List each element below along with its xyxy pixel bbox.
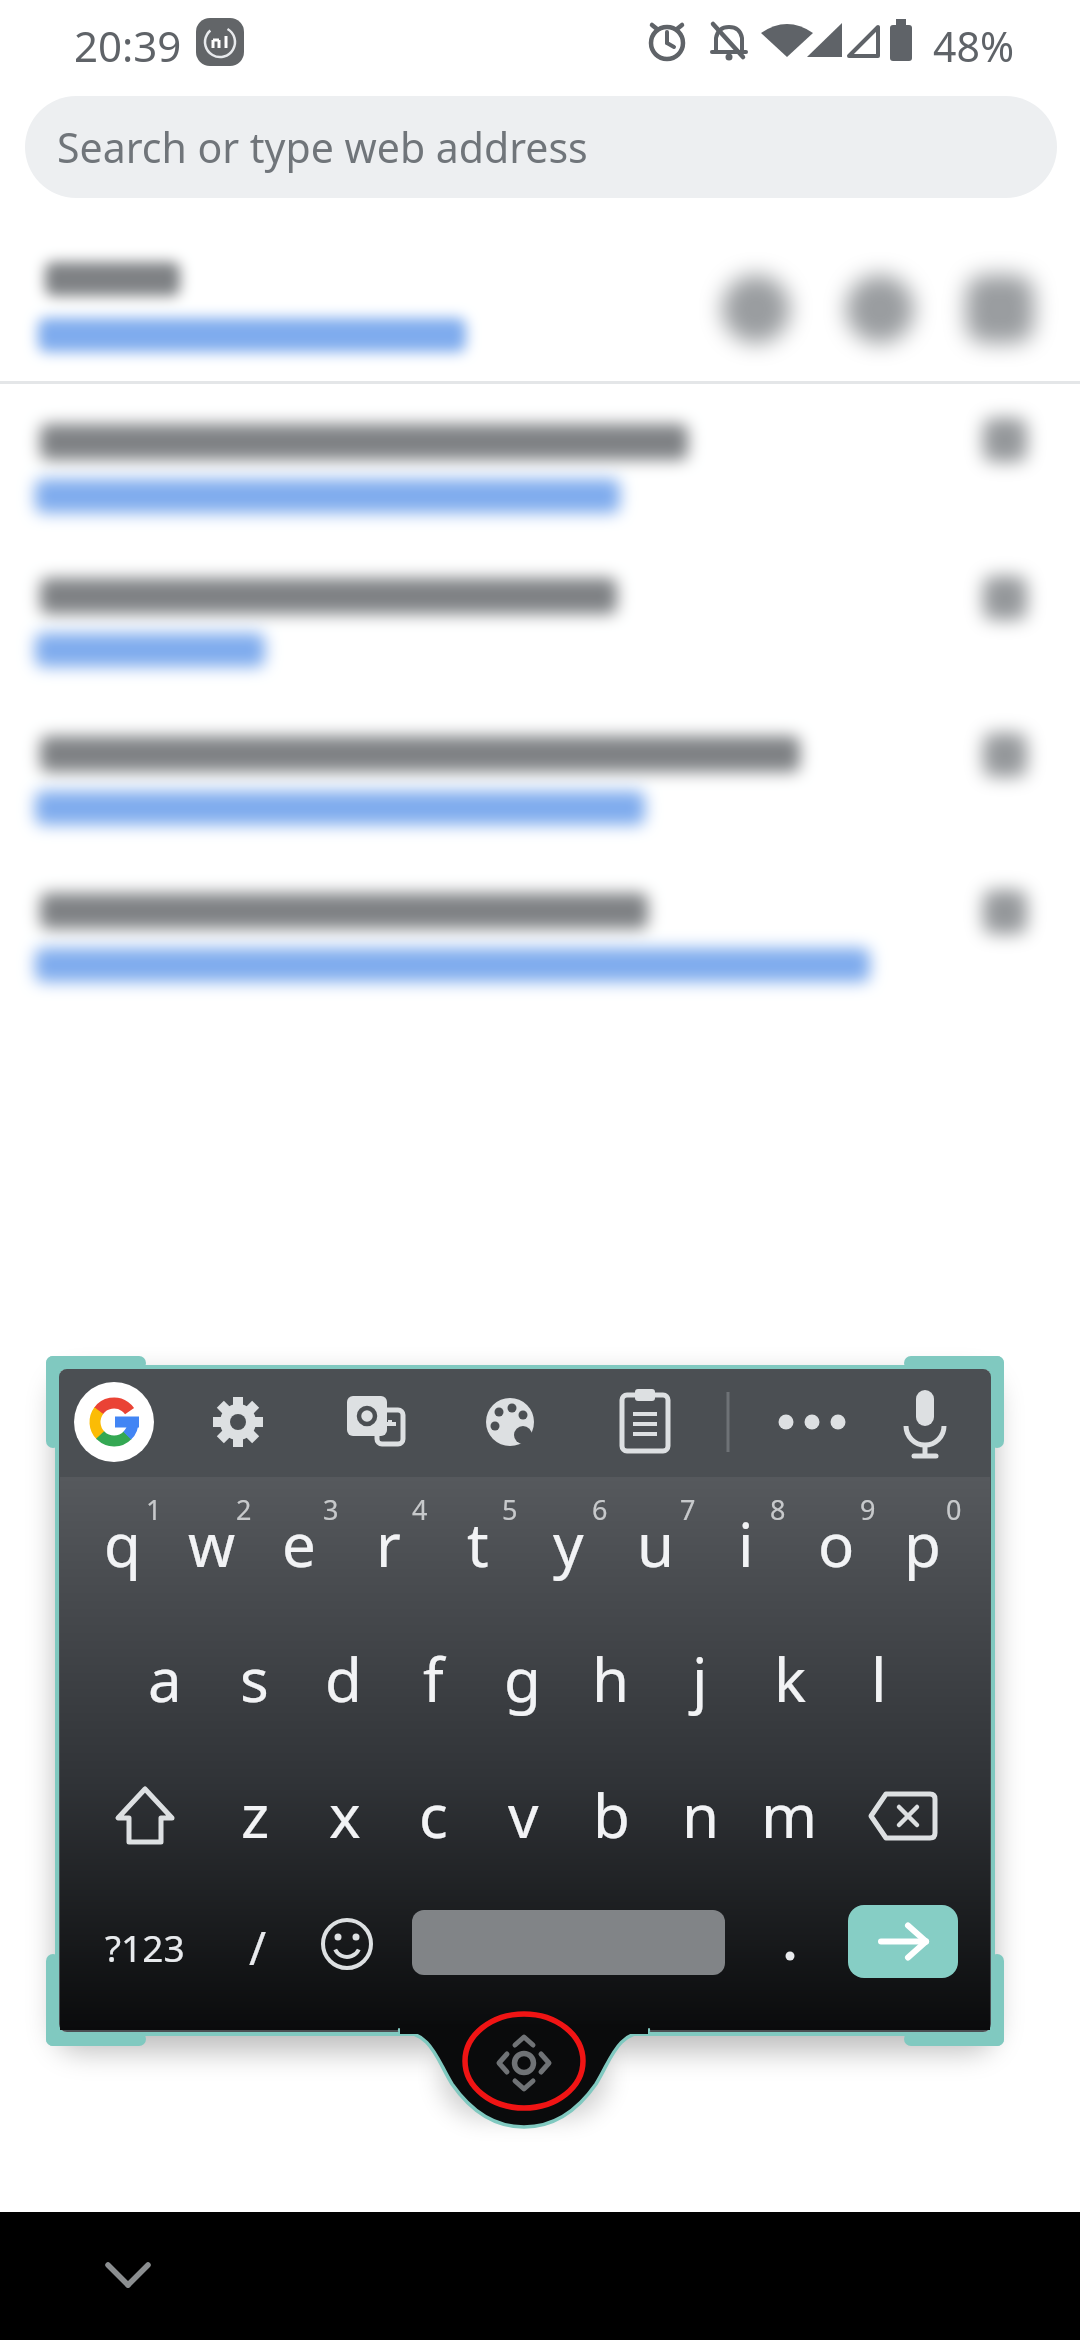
staticText: 9 (860, 1491, 876, 1528)
button[interactable]: a (121, 1612, 209, 1745)
button[interactable]: b (567, 1748, 655, 1881)
staticText: m (761, 1774, 818, 1856)
staticText: f (423, 1638, 444, 1720)
button[interactable] (69, 1372, 159, 1470)
button[interactable]: n (657, 1748, 745, 1881)
button[interactable]: v (479, 1748, 567, 1881)
button[interactable] (465, 1372, 555, 1470)
button[interactable]: m (745, 1748, 833, 1881)
button[interactable]: w (168, 1477, 256, 1610)
button[interactable]: c (389, 1748, 477, 1881)
button[interactable] (330, 1372, 420, 1470)
staticText: Search or type web address (57, 119, 588, 175)
button[interactable]: ?123 (99, 1884, 191, 2010)
staticText: q (104, 1503, 141, 1585)
button[interactable] (854, 1748, 952, 1881)
button[interactable] (0, 230, 1080, 383)
staticText: 5 (502, 1491, 518, 1528)
staticText: u (637, 1503, 675, 1585)
staticText: v (508, 1774, 539, 1856)
button[interactable] (747, 1884, 835, 2010)
button[interactable]: t (434, 1477, 522, 1610)
button[interactable]: j (656, 1612, 744, 1745)
button[interactable] (600, 1372, 690, 1470)
staticText: s (240, 1638, 269, 1720)
button[interactable]: s (210, 1612, 298, 1745)
staticText: b (593, 1774, 630, 1856)
button[interactable]: / (214, 1884, 302, 2010)
button[interactable] (464, 2010, 584, 2120)
button[interactable]: p (878, 1477, 966, 1610)
staticText: o (818, 1503, 855, 1585)
staticText: ?123 (105, 1922, 185, 1972)
button[interactable] (0, 860, 1080, 1010)
staticText: y (553, 1503, 584, 1585)
button[interactable]: h (567, 1612, 655, 1745)
staticText: 20:39 (74, 17, 182, 74)
staticText: 6 (592, 1491, 608, 1528)
staticText: r (376, 1503, 401, 1585)
button[interactable]: u (612, 1477, 700, 1610)
staticText: 4 (412, 1491, 428, 1528)
staticText: c (419, 1774, 448, 1856)
button[interactable]: r (344, 1477, 432, 1610)
staticText: / (249, 1916, 267, 1979)
button[interactable] (88, 2236, 168, 2316)
button[interactable] (0, 383, 1080, 540)
button[interactable] (412, 1910, 725, 1975)
staticText: g (504, 1638, 541, 1720)
staticText: k (774, 1638, 807, 1720)
button[interactable]: q (78, 1477, 166, 1610)
button[interactable] (193, 1372, 283, 1470)
button[interactable]: y (524, 1477, 612, 1610)
staticText: d (325, 1638, 362, 1720)
button[interactable]: k (746, 1612, 834, 1745)
staticText: n (682, 1774, 720, 1856)
button[interactable] (848, 1905, 958, 1978)
button[interactable]: e (255, 1477, 343, 1610)
button[interactable] (880, 1372, 970, 1470)
button[interactable] (0, 540, 1080, 700)
staticText: t (467, 1503, 489, 1585)
staticText: 1 (146, 1491, 162, 1528)
button[interactable]: z (211, 1748, 299, 1881)
staticText: p (904, 1503, 941, 1585)
staticText: j (692, 1638, 708, 1720)
staticText: w (188, 1503, 236, 1585)
button[interactable] (0, 700, 1080, 860)
staticText: l (871, 1638, 887, 1720)
staticText: 8 (770, 1491, 786, 1528)
button[interactable] (767, 1372, 857, 1470)
button[interactable]: l (835, 1612, 923, 1745)
button[interactable] (96, 1748, 194, 1881)
staticText: h (592, 1638, 630, 1720)
staticText: 2 (236, 1491, 252, 1528)
staticText: 7 (680, 1491, 696, 1528)
button[interactable]: o (792, 1477, 880, 1610)
button[interactable]: Search or type web address (25, 96, 1057, 198)
staticText: x (329, 1774, 361, 1856)
staticText: i (738, 1503, 754, 1585)
button[interactable]: d (299, 1612, 387, 1745)
button[interactable]: f (389, 1612, 477, 1745)
staticText: 0 (946, 1491, 962, 1528)
button[interactable]: g (478, 1612, 566, 1745)
button[interactable]: x (301, 1748, 389, 1881)
staticText: 48% (933, 18, 1014, 74)
staticText: z (241, 1774, 270, 1856)
staticText: e (282, 1503, 316, 1585)
button[interactable]: i (702, 1477, 790, 1610)
button[interactable] (303, 1884, 391, 2010)
staticText: 3 (323, 1491, 339, 1528)
staticText: a (148, 1638, 182, 1720)
